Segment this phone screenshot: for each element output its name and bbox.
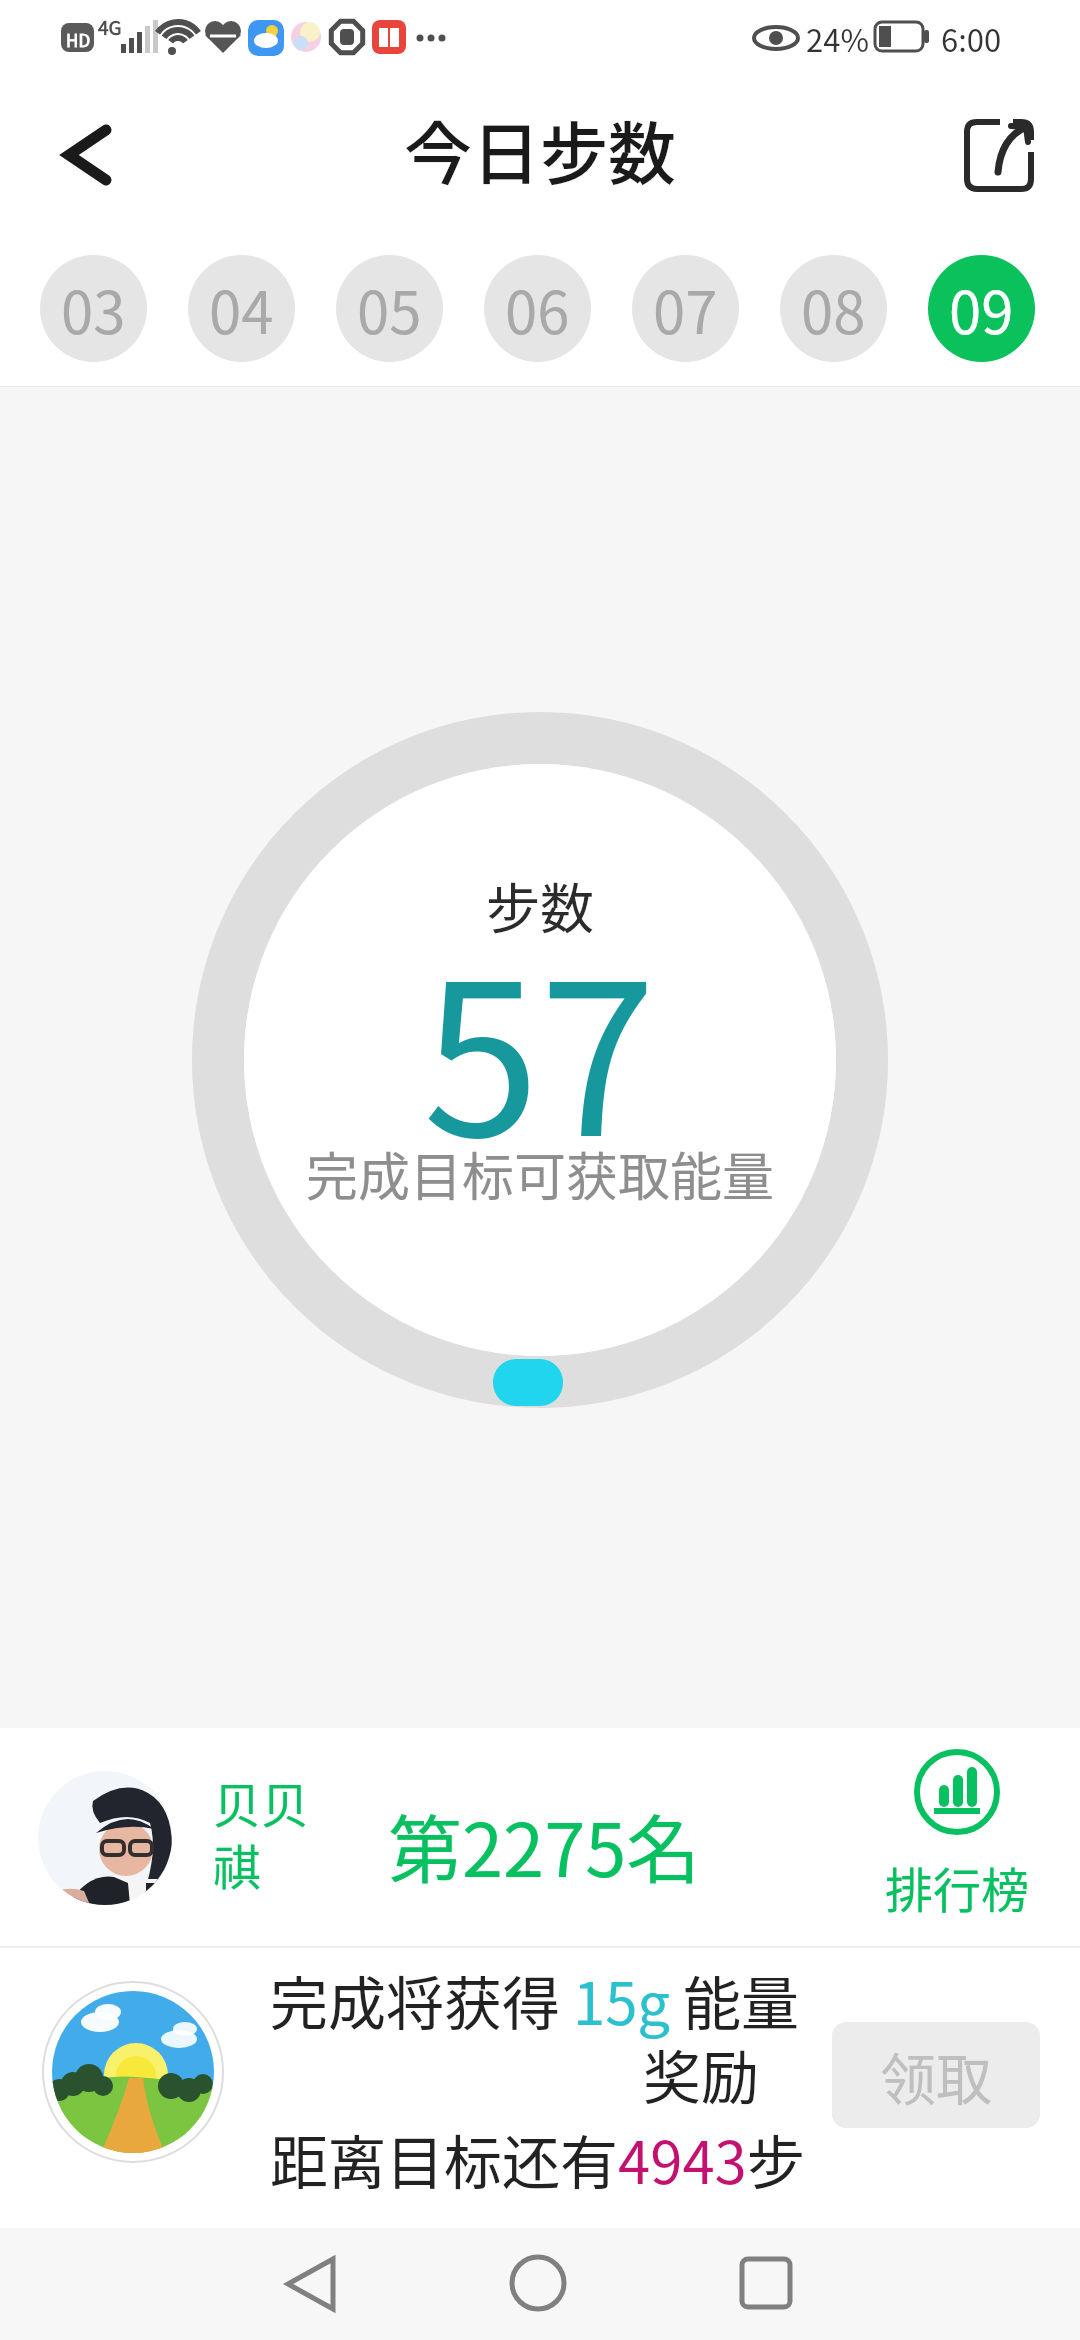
button[interactable] (498, 2254, 578, 2314)
staticText: 步数 (486, 866, 594, 944)
staticText: 奖励 (643, 2032, 760, 2116)
button[interactable]: 排行榜 (870, 1738, 1050, 1938)
staticText: 贝贝 (213, 1767, 310, 1837)
staticText: HD (66, 27, 91, 52)
button[interactable] (270, 2254, 350, 2314)
button[interactable]: 贝贝 (0, 1728, 1080, 1946)
staticText: 6:00 (941, 16, 1002, 61)
staticText: 排行榜 (885, 1852, 1030, 1922)
staticText: 完成目标可获取能量 (306, 1136, 775, 1211)
staticText: 06 (505, 267, 570, 351)
staticText: 05 (357, 267, 422, 351)
button[interactable]: 08 (780, 255, 887, 362)
staticText: 03 (61, 267, 126, 351)
button[interactable]: 09 (928, 255, 1035, 362)
staticText: 04 (209, 267, 274, 351)
staticText: 距离目标还有4943步 (270, 2117, 805, 2201)
button[interactable]: 03 (40, 255, 147, 362)
staticText: 57 (423, 892, 657, 1196)
button[interactable] (50, 125, 110, 185)
button[interactable] (726, 2254, 806, 2314)
button[interactable]: 04 (188, 255, 295, 362)
button[interactable] (960, 120, 1032, 192)
button[interactable]: 05 (336, 255, 443, 362)
staticText: 祺 (213, 1829, 262, 1899)
staticText: 08 (801, 267, 866, 351)
button[interactable]: 领取 (832, 2022, 1040, 2128)
staticText: 领取 (880, 2035, 992, 2116)
staticText: 24% (806, 16, 869, 61)
staticText: 第2275名 (388, 1791, 701, 1898)
staticText: 09 (949, 267, 1014, 351)
staticText: 4G (98, 13, 122, 41)
staticText: 07 (653, 267, 718, 351)
button[interactable]: 06 (484, 255, 591, 362)
staticText: 完成将获得 15g 能量 (270, 1958, 800, 2042)
button[interactable]: 07 (632, 255, 739, 362)
staticText: 今日步数 (404, 100, 677, 198)
